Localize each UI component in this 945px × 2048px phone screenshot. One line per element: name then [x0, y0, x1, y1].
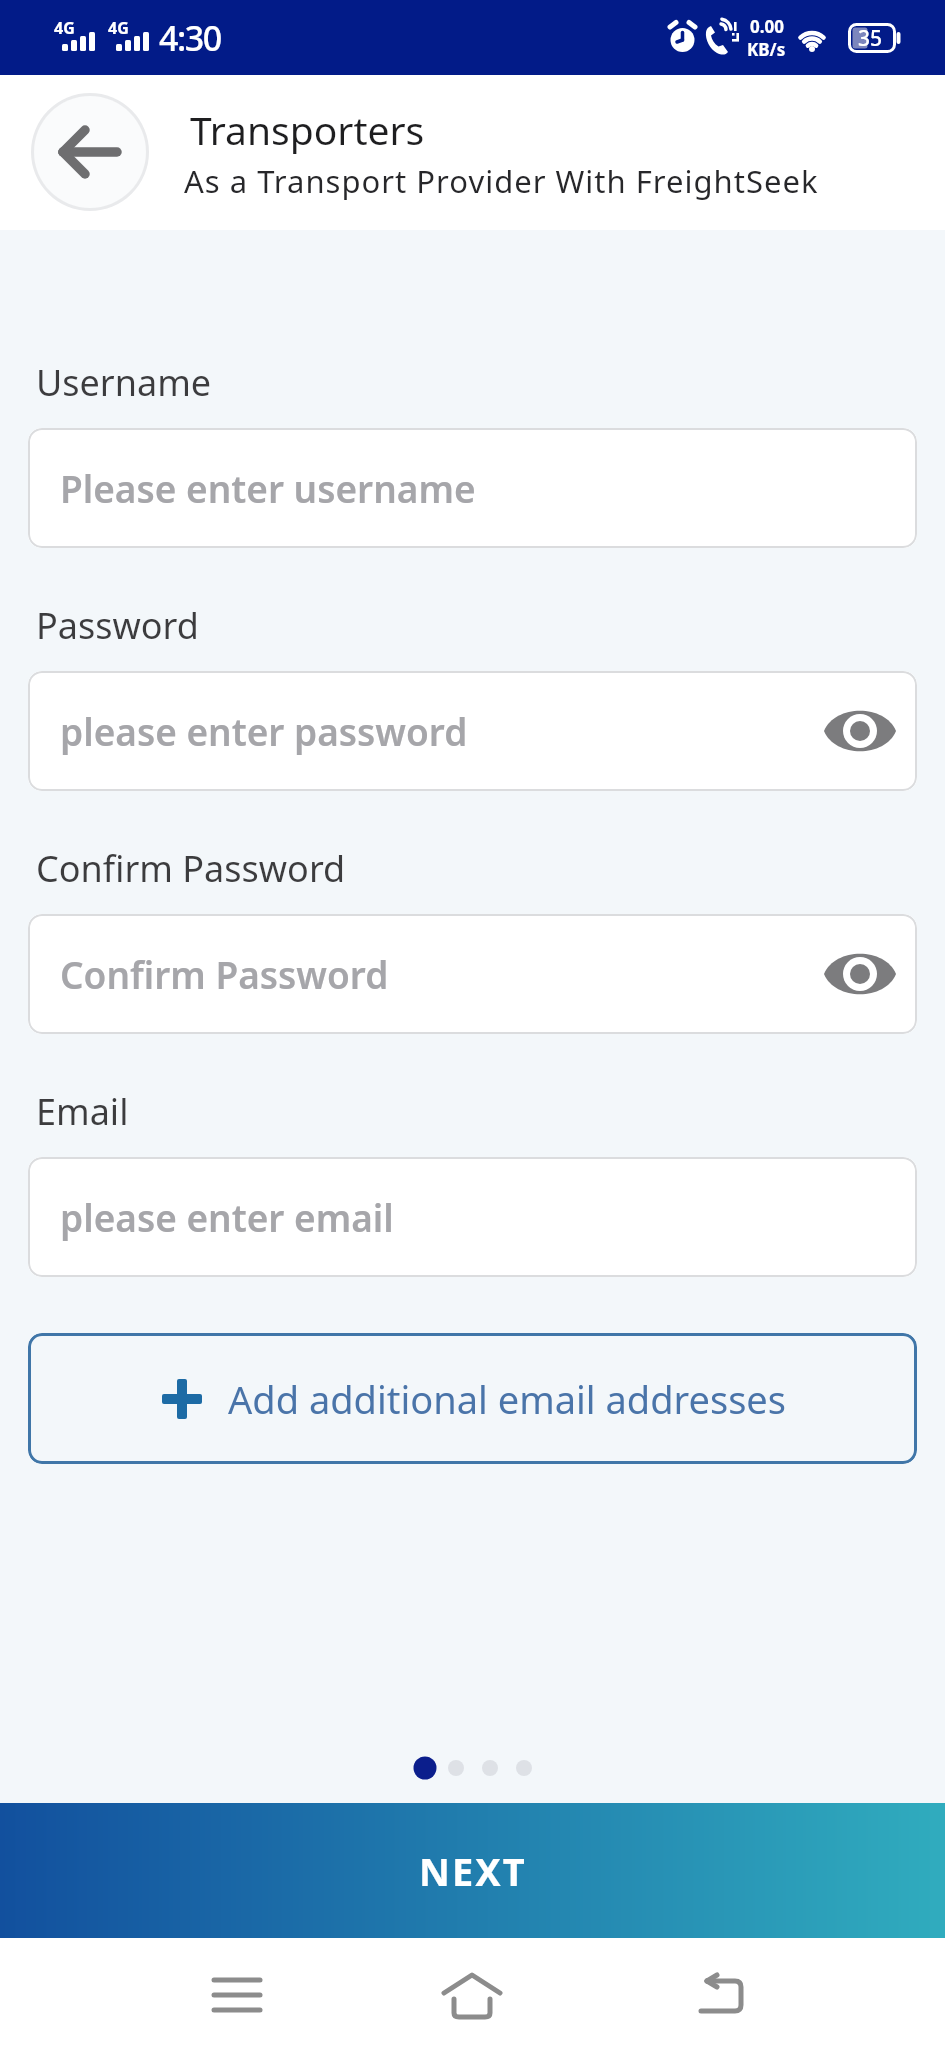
staticText: Confirm Password [60, 949, 389, 999]
staticText: Username [36, 358, 212, 407]
staticText: As a Transport Provider With FreightSeek [184, 160, 819, 202]
button[interactable] [427, 1966, 517, 2026]
staticText: Confirm Password [36, 844, 346, 893]
staticText: Transporters [190, 103, 425, 156]
staticText: 0.00 [750, 15, 784, 38]
button[interactable]: please enter password [28, 671, 917, 791]
button[interactable] [34, 96, 146, 208]
staticText: KB/s [747, 38, 786, 61]
button[interactable]: Add additional email addresses [28, 1333, 917, 1464]
staticText: 4G [108, 17, 129, 39]
staticText: please enter email [60, 1192, 394, 1242]
staticText: please enter password [60, 706, 468, 756]
button[interactable]: please enter email [28, 1157, 917, 1277]
button[interactable]: Please enter username [28, 428, 917, 548]
staticText: 4:30 [159, 15, 221, 61]
staticText: 4G [54, 17, 75, 39]
staticText: Please enter username [60, 463, 476, 513]
staticText: Add additional email addresses [228, 1373, 786, 1425]
button[interactable] [673, 1966, 763, 2026]
staticText: Email [36, 1087, 129, 1136]
button[interactable]: Confirm Password [28, 914, 917, 1034]
staticText: Password [36, 601, 199, 650]
button[interactable]: NEXT [0, 1803, 945, 1938]
staticText: 35 [858, 24, 883, 53]
button[interactable] [192, 1966, 282, 2026]
staticText: NEXT [419, 1845, 527, 1897]
